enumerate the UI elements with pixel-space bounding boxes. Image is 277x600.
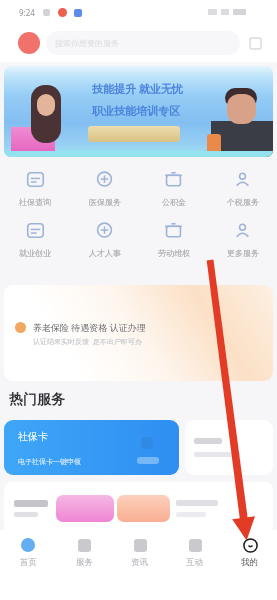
button[interactable]: 公积金: [139, 164, 208, 212]
staticText: 服务: [76, 557, 93, 568]
staticText: 医保服务: [89, 197, 121, 207]
staticText: 个税服务: [227, 197, 259, 207]
staticText: 职业技能培训专区: [92, 104, 180, 118]
staticText: 人才人事: [89, 248, 121, 258]
staticText: 认证结果实时反馈 足不出户即可办: [33, 337, 142, 347]
button[interactable]: 医保服务: [70, 164, 139, 212]
button[interactable]: 人才人事: [70, 215, 139, 263]
button[interactable]: 个税服务: [208, 164, 277, 212]
button[interactable]: 搜索你想要的服务: [46, 31, 240, 55]
button[interactable]: 首页: [0, 530, 56, 574]
button[interactable]: [4, 482, 273, 535]
button[interactable]: 资讯: [112, 530, 167, 574]
button[interactable]: App logo: [18, 32, 40, 54]
staticText: 养老保险 待遇资格 认证办理: [33, 321, 146, 333]
staticText: 电子社保卡一键申领: [18, 457, 81, 466]
button[interactable]: Scan code: [247, 35, 263, 51]
staticText: 我的: [241, 557, 258, 568]
staticText: 互动: [186, 557, 203, 568]
staticText: 公积金: [162, 197, 186, 207]
staticText: 社保卡: [18, 430, 48, 443]
staticText: 首页: [20, 557, 37, 568]
button[interactable]: [185, 420, 273, 475]
button[interactable]: 社保查询: [0, 164, 70, 212]
staticText: 资讯: [131, 557, 148, 568]
staticText: 技能提升 就业无忧: [92, 81, 183, 96]
button[interactable]: 更多服务: [208, 215, 277, 263]
button[interactable]: 就业创业: [0, 215, 70, 263]
button[interactable]: 养老保险 待遇资格 认证办理: [4, 285, 273, 381]
staticText: 搜索你想要的服务: [55, 38, 119, 48]
button[interactable]: 技能提升 就业无忧: [4, 66, 273, 157]
button[interactable]: 社保卡: [4, 420, 179, 475]
staticText: 热门服务: [9, 391, 65, 409]
staticText: 就业创业: [19, 248, 51, 258]
staticText: 9:24: [19, 7, 35, 18]
staticText: 社保查询: [19, 197, 51, 207]
button[interactable]: 劳动维权: [139, 215, 208, 263]
button[interactable]: 互动: [167, 530, 222, 574]
button[interactable]: 服务: [56, 530, 112, 574]
button[interactable]: 我的: [222, 530, 277, 574]
staticText: 更多服务: [227, 248, 259, 258]
staticText: 劳动维权: [158, 248, 190, 258]
